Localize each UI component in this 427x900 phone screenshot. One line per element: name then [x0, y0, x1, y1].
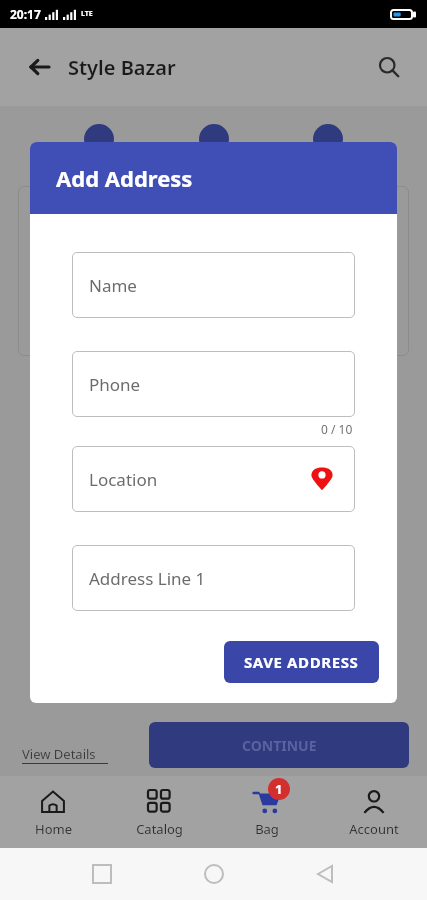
staticText: View Details [22, 745, 96, 763]
staticText: Bag [255, 820, 279, 838]
staticText: Phone [89, 373, 141, 396]
staticText: Name [89, 274, 137, 297]
button[interactable]: 1 [213, 776, 320, 848]
staticText: Address Line 1 [89, 567, 206, 590]
staticText: CONTINUE [242, 736, 317, 755]
staticText: Home [35, 820, 72, 838]
button[interactable]: Phone [72, 351, 355, 417]
button[interactable]: Back [20, 47, 60, 87]
staticText: Style Bazar [68, 54, 176, 81]
button[interactable]: Search [369, 47, 409, 87]
button[interactable]: SAVE ADDRESS [224, 641, 379, 683]
button[interactable]: Address Line 1 [72, 545, 355, 611]
button[interactable]: Account [320, 776, 427, 848]
staticText: Account [349, 820, 399, 838]
button[interactable]: Catalog [106, 776, 213, 848]
button[interactable]: CONTINUE [149, 722, 409, 768]
button[interactable]: Name [72, 252, 355, 318]
staticText: 1 [275, 780, 283, 798]
button[interactable]: Location [72, 446, 355, 512]
button[interactable]: Home [0, 776, 106, 848]
staticText: Add Address [56, 163, 193, 193]
staticText: SAVE ADDRESS [244, 652, 359, 672]
staticText: 20:17 [10, 6, 41, 22]
staticText: Location [89, 468, 158, 491]
staticText: 0 / 10 [321, 421, 353, 437]
staticText: LTE [81, 9, 93, 19]
staticText: Catalog [136, 820, 183, 838]
